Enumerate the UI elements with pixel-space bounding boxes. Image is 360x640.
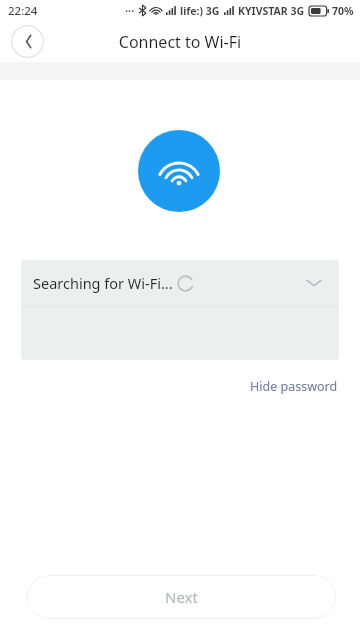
button[interactable]: Searching for Wi-Fi... xyxy=(21,260,339,306)
staticText: Searching for Wi-Fi... xyxy=(33,273,173,293)
staticText: 22:24 xyxy=(8,3,38,19)
staticText: ··· xyxy=(125,3,135,18)
button[interactable]: Next xyxy=(27,575,336,619)
staticText: Connect to Wi-Fi xyxy=(0,31,360,53)
button[interactable]: Hide password xyxy=(246,375,342,398)
staticText: Hide password xyxy=(250,378,338,395)
button[interactable]: Expand network list xyxy=(303,272,325,294)
button[interactable]: Back xyxy=(11,25,44,58)
staticText: 70% xyxy=(332,4,354,18)
staticText: Next xyxy=(165,587,198,607)
staticText: KYIVSTAR 3G xyxy=(238,4,305,18)
staticText: life:) 3G xyxy=(180,4,220,18)
